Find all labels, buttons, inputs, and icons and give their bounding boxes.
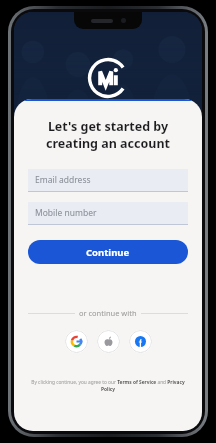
button[interactable]: Sign in with Apple [97,330,120,353]
staticText: Continue [86,246,130,259]
button[interactable]: Mobile number [28,202,188,225]
staticText: Mobile number [35,207,97,219]
button[interactable]: Sign in with Google [65,330,88,353]
button[interactable]: Continue [28,240,188,264]
staticText: Email address [35,174,91,186]
button[interactable]: Email address [28,169,188,192]
staticText: Let's get started by creating an account [28,118,188,151]
staticText: or continue with [75,308,141,318]
button[interactable]: Sign in with Facebook [129,330,152,353]
staticText: By clicking continue, you agree to our T… [28,379,188,393]
